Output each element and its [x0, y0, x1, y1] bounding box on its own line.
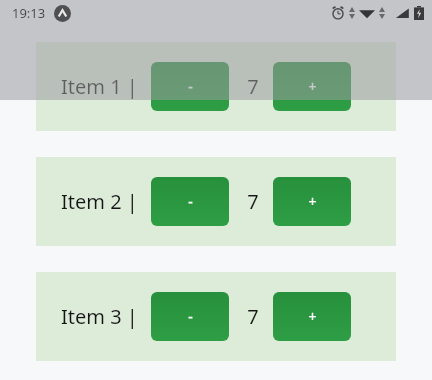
- staticText: Item 3 |: [61, 303, 138, 330]
- button[interactable]: Increment: [273, 292, 351, 341]
- staticText: -: [188, 77, 193, 96]
- button[interactable]: Decrement: [151, 62, 229, 111]
- staticText: 7: [241, 188, 265, 215]
- staticText: +: [308, 307, 317, 326]
- button[interactable]: Increment: [273, 62, 351, 111]
- staticText: -: [188, 307, 193, 326]
- button[interactable]: Item 3 |: [36, 272, 396, 361]
- staticText: -: [188, 192, 193, 211]
- staticText: Item 2 |: [61, 188, 138, 215]
- staticText: 7: [241, 303, 265, 330]
- staticText: 7: [241, 73, 265, 100]
- button[interactable]: Increment: [273, 177, 351, 226]
- button[interactable]: Decrement: [151, 177, 229, 226]
- staticText: Item 1 |: [61, 73, 138, 100]
- button[interactable]: Item 1 |: [36, 42, 396, 131]
- button[interactable]: Item 2 |: [36, 157, 396, 246]
- staticText: +: [308, 77, 317, 96]
- button[interactable]: Decrement: [151, 292, 229, 341]
- staticText: +: [308, 192, 317, 211]
- staticText: 19:13: [12, 4, 46, 22]
